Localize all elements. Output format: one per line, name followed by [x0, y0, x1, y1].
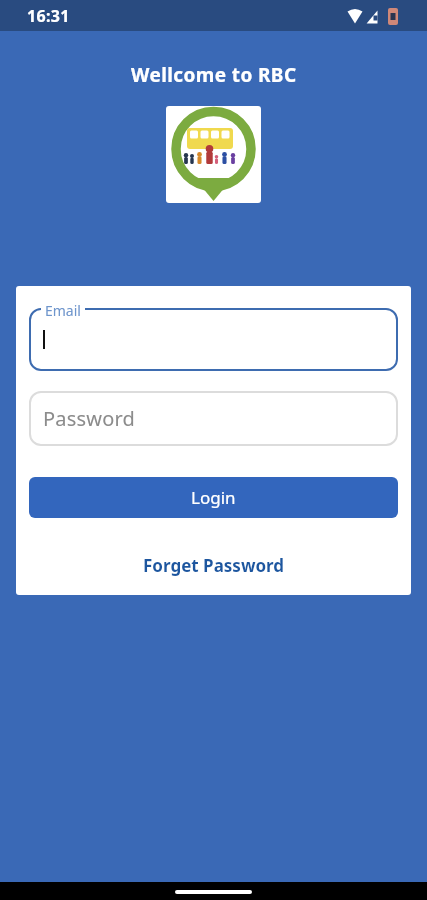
- staticText: Password: [43, 405, 136, 432]
- button[interactable]: Forget Password: [143, 554, 285, 577]
- button[interactable]: Password: [29, 391, 398, 446]
- staticText: Email: [45, 301, 81, 320]
- button[interactable]: [29, 308, 398, 371]
- staticText: 16:31: [27, 5, 70, 27]
- button[interactable]: Login: [29, 477, 398, 518]
- staticText: Wellcome to RBC: [131, 62, 297, 88]
- staticText: Login: [191, 486, 236, 509]
